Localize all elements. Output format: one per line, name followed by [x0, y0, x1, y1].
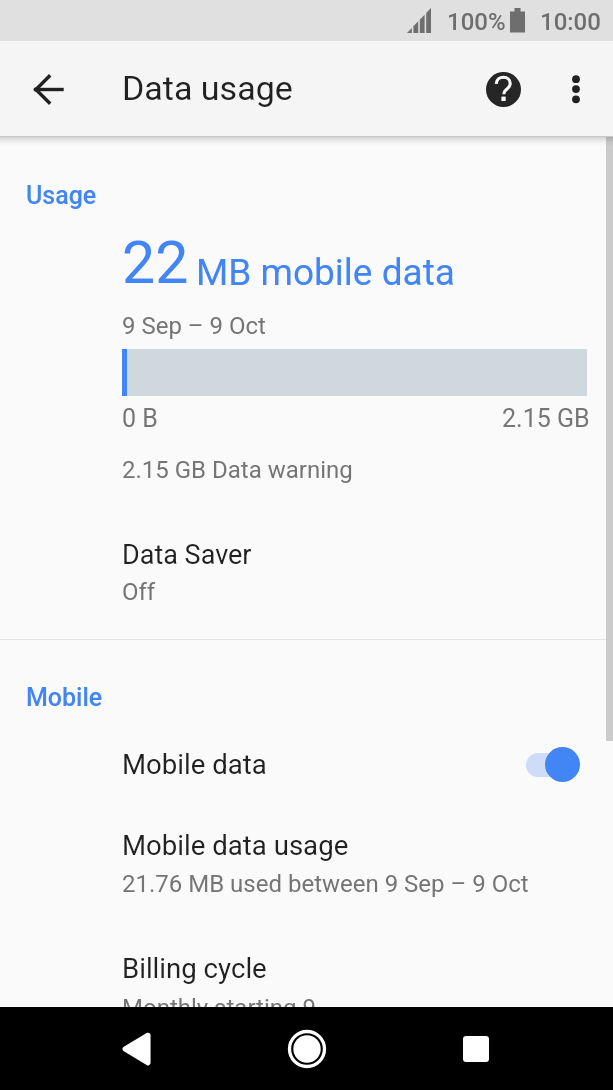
button[interactable]: Home: [277, 1019, 337, 1079]
staticText: 22: [122, 228, 189, 297]
staticText: Billing cycle: [122, 952, 267, 984]
staticText: Data usage: [122, 68, 293, 108]
staticText: MB mobile data: [196, 251, 455, 294]
staticText: Monthly starting 9: [122, 994, 316, 1022]
button[interactable]: Back: [20, 61, 76, 117]
staticText: Mobile data usage: [122, 829, 349, 861]
staticText: Off: [122, 578, 156, 606]
staticText: Mobile data: [122, 748, 267, 780]
button[interactable]: More options: [548, 61, 604, 117]
staticText: Usage: [26, 181, 97, 210]
button[interactable]: Help: [475, 61, 531, 117]
staticText: Mobile: [26, 683, 103, 712]
button[interactable]: Mobile data: [0, 722, 613, 808]
button[interactable]: Billing cycle: [0, 930, 613, 1030]
staticText: 100%: [447, 8, 506, 36]
button[interactable]: Mobile data usage: [0, 808, 613, 914]
staticText: 21.76 MB used between 9 Sep – 9 Oct: [122, 870, 529, 898]
button[interactable]: Data Saver: [0, 519, 613, 619]
button[interactable]: Recent apps: [446, 1019, 506, 1079]
button[interactable]: Back: [105, 1019, 165, 1079]
staticText: 9 Sep – 9 Oct: [122, 312, 266, 340]
staticText: Data Saver: [122, 539, 252, 571]
staticText: 10:00: [540, 8, 601, 36]
staticText: 2.15 GB Data warning: [122, 456, 353, 484]
staticText: 2.15 GB: [502, 404, 590, 433]
staticText: 0 B: [122, 404, 158, 433]
